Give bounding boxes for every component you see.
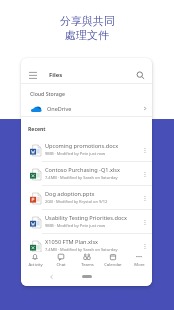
staticText: More [134, 262, 145, 268]
staticText: X1050 FTM Plan.xlsx [45, 238, 99, 246]
button[interactable]: Teams [74, 252, 100, 268]
staticText: Files [49, 71, 63, 79]
staticText: Teams [81, 262, 94, 268]
button[interactable]: More [126, 252, 152, 268]
staticText: 7.4MB · Modified by Sarah on Saturday [45, 175, 118, 180]
button[interactable]: More options [140, 194, 149, 203]
staticText: 7.4MB · Modified by Sarah on Saturday [45, 247, 118, 252]
staticText: OneDrive [47, 105, 72, 112]
staticText: Contoso Purchasing -Q1.xlsx [45, 166, 121, 174]
button[interactable]: Dog adoption.pptx [21, 186, 152, 210]
button[interactable]: More options [140, 242, 149, 251]
staticText: Calendar [104, 262, 122, 268]
staticText: 9MB · Modified by Pete just now [45, 223, 106, 228]
button[interactable]: Calendar [100, 252, 126, 268]
staticText: Dog adoption.pptx [45, 190, 95, 198]
button[interactable]: OneDrive [21, 101, 152, 116]
staticText: 9MB · Modified by Pete just now [45, 151, 106, 156]
button[interactable]: More options [140, 218, 149, 227]
staticText: 2GB · Modified by Krystal on 9/12 [45, 199, 108, 204]
button[interactable]: More options [140, 146, 149, 155]
button[interactable]: Activity [22, 252, 48, 268]
button[interactable]: More options [140, 170, 149, 179]
staticText: Upcoming promotions.docx [45, 142, 119, 150]
staticText: 分享與共同 [60, 14, 115, 28]
button[interactable]: Usability Testing Priorities.docx [21, 210, 152, 234]
button[interactable]: Back [47, 273, 55, 281]
button[interactable]: Upcoming promotions.docx [21, 138, 152, 162]
button[interactable]: Contoso Purchasing -Q1.xlsx [21, 162, 152, 186]
button[interactable]: Search [134, 69, 146, 81]
staticText: Activity [28, 262, 43, 268]
staticText: Cloud Storage [30, 90, 65, 97]
staticText: 處理文件 [65, 28, 109, 42]
button[interactable]: Menu [27, 69, 39, 81]
button[interactable]: Chat [48, 252, 74, 268]
staticText: Recent [28, 126, 46, 133]
button[interactable]: X1050 FTM Plan.xlsx [21, 234, 152, 258]
staticText: Chat [56, 262, 66, 268]
staticText: Usability Testing Priorities.docx [45, 214, 127, 222]
